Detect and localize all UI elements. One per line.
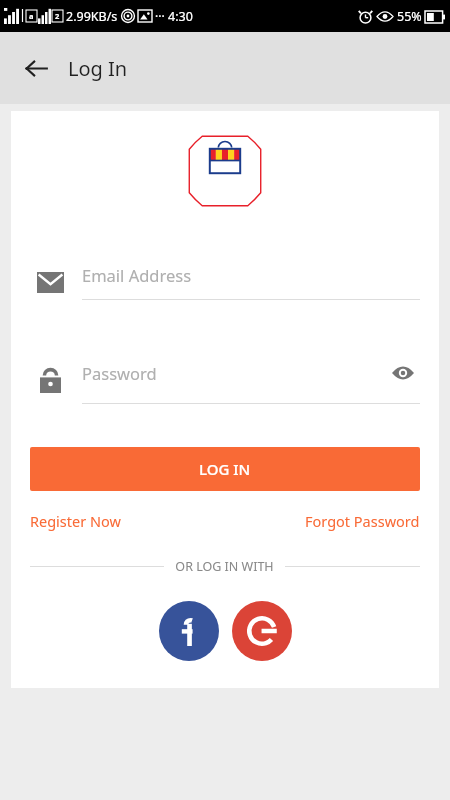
button[interactable]: Register Now <box>30 508 121 534</box>
button[interactable]: Back <box>16 48 56 88</box>
staticText: Email Address <box>82 264 420 286</box>
button[interactable]: Email Address <box>82 264 420 300</box>
other: Email <box>36 268 64 296</box>
staticText: ··· <box>155 8 165 24</box>
staticText: 2.99KB/s <box>66 8 118 25</box>
button[interactable]: Show password <box>386 356 420 390</box>
button[interactable]: Forgot Password <box>305 508 420 534</box>
staticText: LOG IN <box>199 459 251 479</box>
staticText: 55% <box>397 8 422 25</box>
staticText: a <box>29 11 34 21</box>
staticText: 4:30 <box>168 8 193 25</box>
button[interactable]: Log in with Facebook <box>159 601 219 661</box>
button[interactable]: Password <box>82 356 420 404</box>
staticText: 2 <box>55 11 60 21</box>
staticText: Password <box>82 362 386 384</box>
staticText: Forgot Password <box>305 511 420 531</box>
button[interactable]: Log in with Google <box>232 601 292 661</box>
staticText: OR LOG IN WITH <box>175 558 274 575</box>
button[interactable]: LOG IN <box>30 447 420 491</box>
other: Password <box>36 366 64 394</box>
staticText: Log In <box>68 55 128 82</box>
staticText: Register Now <box>30 511 121 531</box>
